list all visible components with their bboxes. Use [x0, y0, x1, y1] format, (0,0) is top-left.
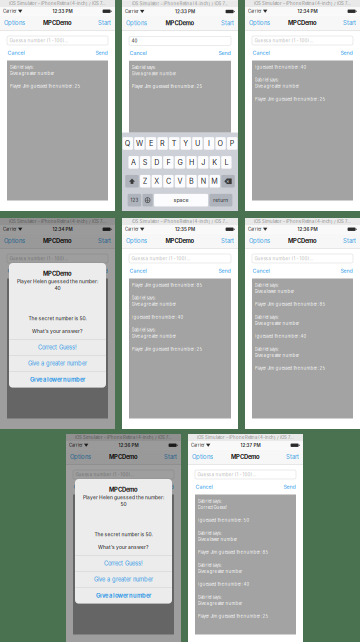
- button[interactable]: Start: [285, 453, 299, 460]
- button[interactable]: Start: [342, 19, 356, 26]
- button[interactable]: Send: [340, 49, 352, 56]
- button[interactable]: Options: [3, 19, 25, 26]
- staticText: X: [154, 177, 159, 186]
- button[interactable]: Correct Guess!: [9, 339, 106, 355]
- button[interactable]: Options: [3, 237, 25, 244]
- staticText: Options: [4, 19, 25, 26]
- button[interactable]: S: [140, 156, 150, 169]
- button[interactable]: P: [227, 137, 237, 150]
- staticText: iOS Simulator – iPhone Retina (4-inch) /…: [197, 435, 294, 440]
- button[interactable]: Cancel: [7, 267, 24, 274]
- button[interactable]: M: [210, 175, 220, 187]
- button[interactable]: K: [210, 156, 220, 169]
- button[interactable]: C: [163, 175, 173, 187]
- button[interactable]: Send: [218, 267, 230, 274]
- button[interactable]: Correct Guess!: [75, 555, 172, 571]
- button[interactable]: Send: [95, 267, 107, 274]
- button[interactable]: Cancel: [252, 49, 269, 56]
- button[interactable]: Options: [125, 19, 147, 27]
- staticText: Gabriel says:: [198, 562, 222, 568]
- staticText: Start: [98, 237, 111, 244]
- staticText: Correct Guess!: [104, 560, 143, 567]
- button[interactable]: H: [186, 156, 197, 169]
- button[interactable]: Start: [342, 237, 356, 244]
- staticText: Gabriel says:: [132, 65, 156, 70]
- button[interactable]: Cancel: [129, 267, 146, 274]
- staticText: G: [177, 158, 182, 167]
- staticText: Carrier: [69, 443, 83, 448]
- button[interactable]: Start: [163, 453, 177, 460]
- button[interactable]: Cancel: [129, 50, 146, 56]
- button[interactable]: U: [192, 137, 202, 150]
- button[interactable]: Cancel: [252, 267, 269, 274]
- staticText: Correct Guess!: [198, 505, 227, 510]
- staticText: Cancel: [129, 50, 146, 56]
- button[interactable]: X: [152, 175, 162, 187]
- button[interactable]: space: [154, 194, 208, 206]
- button[interactable]: Send: [161, 483, 173, 490]
- button[interactable]: Options: [248, 237, 270, 244]
- staticText: Send: [218, 267, 230, 274]
- button[interactable]: O: [215, 137, 226, 150]
- button[interactable]: Start: [97, 237, 111, 244]
- staticText: Give a lower number: [198, 537, 238, 542]
- button[interactable]: return: [209, 194, 232, 206]
- button[interactable]: Give a greater number: [75, 572, 172, 587]
- staticText: Cancel: [252, 267, 269, 274]
- button[interactable]: Options: [191, 453, 213, 460]
- button[interactable]: Send: [283, 483, 295, 490]
- button[interactable]: Options: [248, 19, 270, 26]
- button[interactable]: Send: [218, 50, 230, 56]
- button[interactable]: V: [175, 175, 185, 187]
- staticText: iOS Simulator – iPhone Retina (4-inch) /…: [131, 219, 228, 224]
- button[interactable]: Cancel: [73, 483, 90, 490]
- button[interactable]: Start: [97, 19, 111, 26]
- button[interactable]: A: [128, 156, 139, 169]
- button[interactable]: N: [198, 175, 208, 187]
- button[interactable]: R: [157, 137, 168, 150]
- button[interactable]: Give a lower number: [75, 588, 172, 604]
- staticText: Gabriel says:: [76, 498, 100, 504]
- button[interactable]: J: [198, 156, 208, 169]
- button[interactable]: Options: [69, 453, 91, 460]
- button[interactable]: W: [134, 137, 144, 150]
- button[interactable]: G: [175, 156, 185, 169]
- staticText: Z: [143, 177, 148, 186]
- button[interactable]: Give a greater number: [9, 356, 106, 371]
- button[interactable]: Cancel: [7, 49, 24, 56]
- button[interactable]: Send: [95, 49, 107, 56]
- staticText: I: [208, 139, 210, 148]
- staticText: 40: [132, 38, 138, 43]
- button[interactable]: Next keyboard: [142, 194, 153, 206]
- button[interactable]: F: [163, 156, 173, 169]
- button[interactable]: Delete: [221, 175, 235, 187]
- button[interactable]: B: [186, 175, 197, 187]
- staticText: O: [218, 139, 224, 148]
- staticText: Give a greater number: [132, 334, 177, 339]
- staticText: Send: [95, 267, 107, 274]
- button[interactable]: Shift: [125, 175, 139, 187]
- staticText: iOS Simulator – iPhone Retina (4-inch) /…: [9, 219, 106, 224]
- button[interactable]: Send: [340, 267, 352, 274]
- button[interactable]: Options: [125, 237, 147, 244]
- button[interactable]: E: [146, 137, 156, 150]
- button[interactable]: D: [152, 156, 162, 169]
- button[interactable]: Cancel: [195, 483, 212, 490]
- button[interactable]: L: [221, 156, 231, 169]
- staticText: 50: [120, 501, 126, 507]
- button[interactable]: 123: [128, 194, 141, 206]
- button[interactable]: Start: [220, 237, 234, 244]
- button[interactable]: I: [204, 137, 214, 150]
- button[interactable]: Z: [140, 175, 150, 187]
- staticText: Give a lower number: [255, 289, 295, 294]
- staticText: Gabriel says:: [255, 282, 279, 288]
- button[interactable]: Y: [181, 137, 191, 150]
- button[interactable]: Q: [123, 137, 133, 150]
- button[interactable]: Give a lower number: [9, 372, 106, 388]
- button[interactable]: Start: [220, 19, 234, 27]
- button[interactable]: T: [169, 137, 179, 150]
